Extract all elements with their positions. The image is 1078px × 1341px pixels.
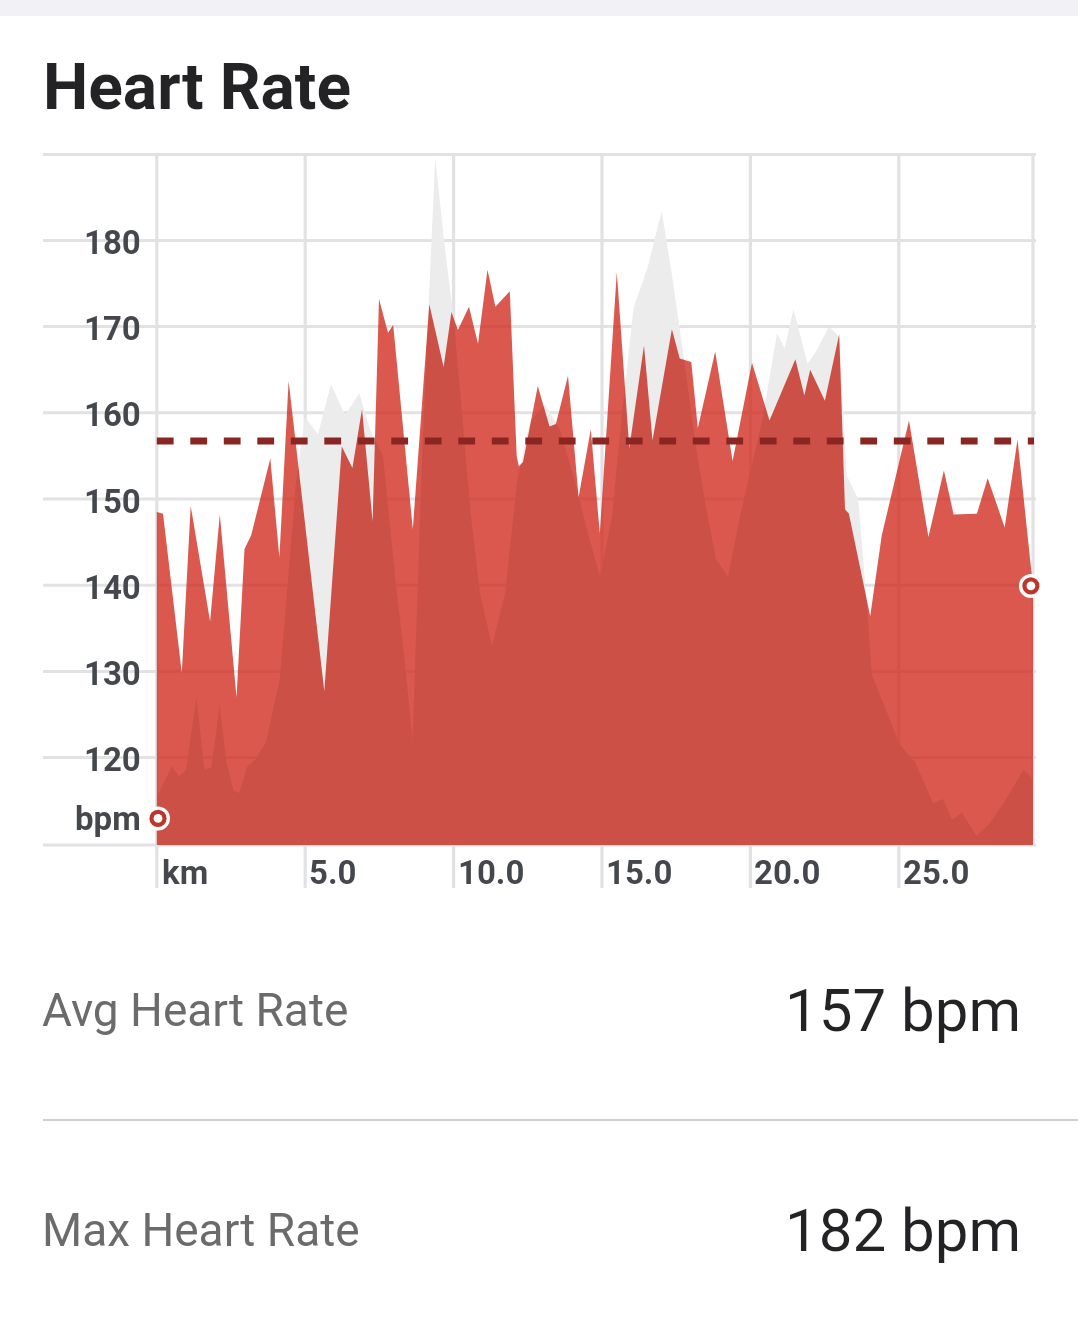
button[interactable]: Max Heart Rate [0,1121,1078,1339]
staticText: 5.0 [309,853,357,892]
staticText: 140 [84,568,141,607]
staticText: Max Heart Rate [42,1203,360,1257]
staticText: 10.0 [458,853,525,892]
staticText: 157 bpm [785,975,1022,1045]
staticText: 20.0 [754,853,821,892]
staticText: 25.0 [903,853,970,892]
staticText: 182 bpm [785,1195,1022,1265]
button[interactable]: Avg Heart Rate [0,901,1078,1119]
staticText: Heart Rate [43,50,352,125]
staticText: 170 [84,309,141,348]
staticText: Avg Heart Rate [42,983,349,1037]
staticText: 160 [84,395,141,434]
staticText: 120 [84,740,141,779]
staticText: bpm [75,799,141,838]
staticText: 130 [84,654,141,693]
staticText: km [162,853,209,892]
staticText: 180 [84,223,141,262]
staticText: 150 [84,482,141,521]
staticText: 15.0 [606,853,673,892]
